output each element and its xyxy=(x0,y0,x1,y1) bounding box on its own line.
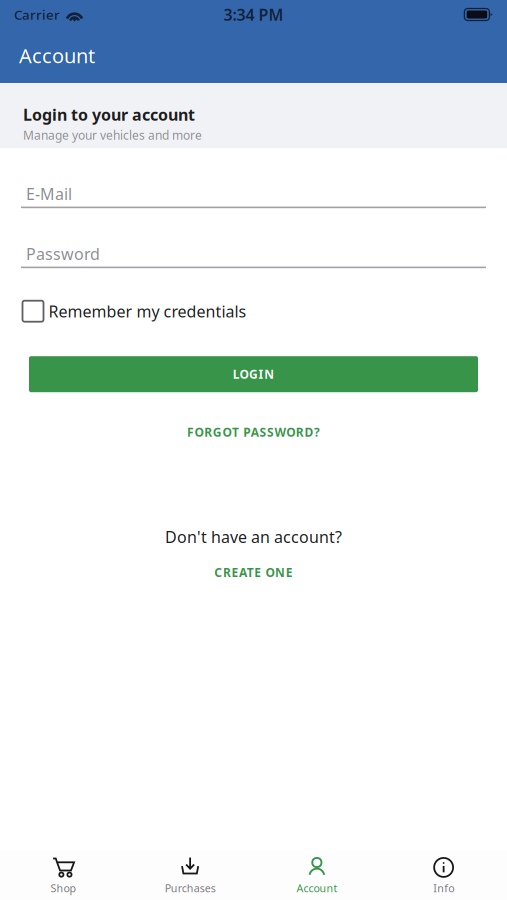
staticText: Remember my credentials xyxy=(48,301,246,322)
staticText: Account xyxy=(296,881,337,895)
staticText: Info xyxy=(433,881,454,895)
staticText: Purchases xyxy=(165,881,216,895)
staticText: LOGIN xyxy=(233,366,274,382)
button[interactable]: Shop xyxy=(0,851,127,900)
staticText: Carrier xyxy=(14,6,60,23)
staticText: Don't have an account? xyxy=(165,526,342,547)
staticText: Manage your vehicles and more xyxy=(23,127,202,143)
button[interactable]: Info xyxy=(380,851,507,900)
staticText: E-Mail xyxy=(26,183,72,204)
button[interactable]: Purchases xyxy=(127,851,254,900)
staticText: Login to your account xyxy=(23,104,195,125)
staticText: Password xyxy=(26,243,100,264)
button[interactable]: Account xyxy=(253,851,380,900)
staticText: Account xyxy=(19,42,95,69)
button[interactable]: LOGIN xyxy=(29,356,478,392)
button[interactable]: CREATE ONE xyxy=(21,560,486,584)
staticText: FORGOT PASSWORD? xyxy=(187,424,320,440)
staticText: 3:34 PM xyxy=(223,4,283,25)
staticText: CREATE ONE xyxy=(214,564,293,580)
button[interactable]: FORGOT PASSWORD? xyxy=(21,415,486,449)
staticText: Shop xyxy=(50,881,76,895)
button[interactable]: Remember my credentials xyxy=(21,299,486,323)
